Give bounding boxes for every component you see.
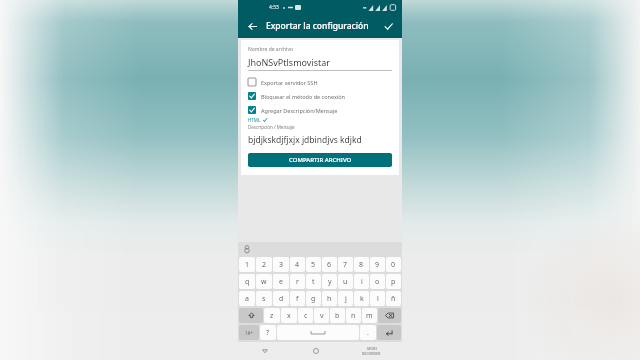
staticText: Bloquear el método de conexión — [261, 93, 345, 100]
button[interactable]: Key — [239, 308, 263, 323]
button[interactable]: Save — [380, 18, 396, 34]
button[interactable]: g — [306, 291, 321, 306]
button[interactable]: j — [338, 291, 353, 306]
staticText: b — [335, 311, 340, 321]
button[interactable]: b — [330, 308, 345, 323]
staticText: 1 — [245, 260, 250, 270]
button[interactable]: y — [322, 274, 337, 289]
button[interactable]: Back — [258, 344, 272, 358]
button[interactable]: 8 — [354, 257, 369, 272]
staticText: 5 — [311, 260, 316, 270]
staticText: Exportar la configuración — [266, 20, 369, 32]
button[interactable]: 7 — [338, 257, 353, 272]
button[interactable]: q — [239, 274, 255, 289]
staticText: d — [279, 294, 284, 304]
staticText: 4 — [295, 260, 300, 270]
staticText: . — [367, 328, 369, 338]
staticText: j — [345, 294, 347, 304]
staticText: w — [261, 277, 267, 287]
staticText: e — [279, 277, 283, 287]
staticText: ? — [266, 328, 270, 338]
button[interactable]: 4 — [290, 257, 305, 272]
button[interactable]: Home — [309, 344, 323, 358]
button[interactable]: 9 — [370, 257, 385, 272]
button[interactable]: 6 — [322, 257, 337, 272]
button[interactable]: k — [354, 291, 369, 306]
staticText: s — [262, 294, 266, 304]
staticText: 2 — [262, 260, 267, 270]
button[interactable]: l — [370, 291, 385, 306]
button[interactable]: Back — [244, 18, 260, 34]
button[interactable]: 0 — [386, 257, 401, 272]
button[interactable]: s — [256, 291, 272, 306]
staticText: 6 — [327, 260, 332, 270]
staticText: JhoNSvPtlsmovistar — [248, 56, 331, 68]
button[interactable]: p — [386, 274, 401, 289]
button[interactable]: JhoNSvPtlsmovistar — [248, 56, 392, 71]
staticText: 1#+ — [245, 330, 254, 336]
staticText: r — [296, 277, 299, 287]
staticText: Descripción / Mensaje — [248, 124, 295, 130]
button[interactable]: 5 — [306, 257, 321, 272]
staticText: 4:53 — [269, 4, 279, 11]
button[interactable]: m — [362, 308, 377, 323]
button[interactable]: w — [256, 274, 272, 289]
button[interactable]: o — [370, 274, 385, 289]
button[interactable]: bjdjkskdjfjxjx jdbindjvs kdjkd — [248, 134, 392, 146]
staticText: t — [312, 277, 315, 287]
staticText: bjdjkskdjfjxjx jdbindjvs kdjkd — [248, 134, 362, 146]
button[interactable]: ñ — [386, 291, 401, 306]
staticText: l — [377, 294, 379, 304]
button[interactable]: x — [281, 308, 297, 323]
staticText: n — [351, 311, 356, 321]
button[interactable]: h — [322, 291, 337, 306]
button[interactable]: u — [338, 274, 353, 289]
staticText: v — [320, 311, 324, 321]
staticText: 0 — [391, 260, 396, 270]
staticText: i — [361, 277, 363, 287]
staticText: x — [287, 311, 291, 321]
button[interactable]: a — [239, 291, 255, 306]
button[interactable]: c — [298, 308, 313, 323]
button[interactable]: Key — [239, 325, 259, 340]
staticText: COMPARTIR ARCHIVO — [289, 156, 352, 164]
button[interactable]: d — [273, 291, 289, 306]
staticText: h — [327, 294, 332, 304]
staticText: g — [311, 294, 316, 304]
button[interactable]: Key — [377, 325, 401, 340]
button[interactable]: . — [360, 325, 376, 340]
button[interactable]: Agregar Descripción/Mensaje — [248, 106, 392, 114]
button[interactable]: i — [354, 274, 369, 289]
button[interactable]: Key — [378, 308, 401, 323]
staticText: MOBI — [367, 346, 377, 351]
staticText: z — [270, 311, 274, 321]
button[interactable]: Recorder watermark — [360, 342, 382, 360]
staticText: f — [296, 294, 299, 304]
staticText: RECORDER — [362, 351, 381, 356]
staticText: 8 — [359, 260, 364, 270]
button[interactable]: ? — [260, 325, 276, 340]
staticText: Exportar servidor SSH — [261, 79, 318, 86]
button[interactable]: e — [273, 274, 289, 289]
staticText: ñ — [391, 294, 396, 304]
staticText: 3 — [279, 260, 284, 270]
button[interactable]: Bloquear el método de conexión — [248, 92, 392, 100]
button[interactable]: v — [314, 308, 329, 323]
button[interactable]: 3 — [273, 257, 289, 272]
button[interactable]: n — [346, 308, 361, 323]
staticText: y — [328, 277, 332, 287]
staticText: 7 — [343, 260, 348, 270]
staticText: k — [360, 294, 364, 304]
staticText: a — [245, 294, 249, 304]
button[interactable]: COMPARTIR ARCHIVO — [248, 153, 392, 167]
button[interactable]: f — [290, 291, 305, 306]
staticText: 9 — [375, 260, 380, 270]
staticText: Nombre de archivo — [248, 46, 293, 53]
button[interactable]: t — [306, 274, 321, 289]
button[interactable]: z — [264, 308, 280, 323]
button[interactable]: 2 — [256, 257, 272, 272]
button[interactable]: r — [290, 274, 305, 289]
button[interactable]: Exportar servidor SSH — [248, 78, 392, 86]
button[interactable]: Space — [277, 325, 359, 340]
button[interactable]: 1 — [239, 257, 255, 272]
